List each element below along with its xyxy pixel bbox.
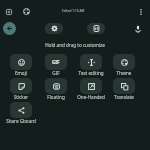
staticText: Sticker (4, 94, 38, 100)
staticText: Translate (107, 94, 141, 100)
staticText: One-Handed (74, 94, 108, 100)
button[interactable]: Sticker (4, 78, 38, 100)
button[interactable]: Translate (107, 78, 141, 100)
staticText: GIF (39, 70, 73, 76)
button[interactable]: Share Gboard (4, 102, 38, 124)
button[interactable]: GIF (39, 54, 73, 76)
button[interactable]: Emoji (4, 54, 38, 76)
button[interactable]: Settings (45, 23, 63, 34)
staticText: GIF (52, 59, 60, 65)
button[interactable]: Resize keyboard (2, 5, 15, 18)
button[interactable]: More options (134, 5, 147, 18)
staticText: Text editing (74, 70, 108, 76)
staticText: Share Gboard (4, 118, 38, 124)
button[interactable]: Text editing (74, 54, 108, 76)
button[interactable]: Voice input (132, 23, 144, 35)
button[interactable]: Floating (39, 78, 73, 100)
staticText: Hold and drag to customize (0, 42, 150, 48)
staticText: Theme (107, 70, 141, 76)
staticText: Floating (39, 94, 73, 100)
button[interactable]: Themes (20, 5, 33, 18)
button[interactable]: Clipboard (87, 23, 105, 34)
staticText: Edited 1:10 AM (62, 9, 85, 13)
button[interactable]: One-Handed (74, 78, 108, 100)
button[interactable]: Theme (107, 54, 141, 76)
staticText: Emoji (4, 70, 38, 76)
button[interactable]: Back (3, 22, 16, 35)
